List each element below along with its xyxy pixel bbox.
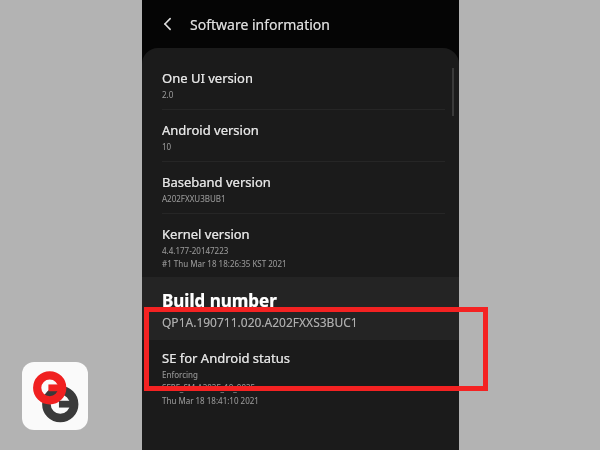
- staticText: SE for Android status: [162, 349, 291, 367]
- button[interactable]: SE for Android status: [142, 340, 459, 415]
- staticText: 4.4.177-20147223: [162, 245, 229, 256]
- staticText: 2.0: [162, 89, 174, 100]
- staticText: Enforcing: [162, 369, 198, 380]
- staticText: Baseband version: [162, 173, 271, 191]
- staticText: A202FXXU3BUB1: [162, 193, 226, 204]
- button[interactable]: One UI version: [142, 58, 459, 110]
- staticText: Kernel version: [162, 225, 250, 243]
- button[interactable]: Baseband version: [142, 162, 459, 214]
- staticText: #1 Thu Mar 18 18:26:35 KST 2021: [162, 258, 287, 269]
- staticText: One UI version: [162, 69, 253, 87]
- staticText: QP1A.190711.020.A202FXXS3BUC1: [162, 314, 358, 330]
- staticText: Build number: [162, 289, 277, 312]
- button[interactable]: Android version: [142, 110, 459, 162]
- staticText: 10: [162, 141, 172, 152]
- staticText: SEPF_SM-A202F_10_0025: [162, 382, 256, 393]
- staticText: Android version: [162, 121, 259, 139]
- button[interactable]: Build number: [142, 277, 459, 340]
- staticText: Thu Mar 18 18:41:10 2021: [162, 395, 259, 406]
- button[interactable]: Kernel version: [142, 214, 459, 277]
- button[interactable]: Back: [152, 8, 184, 40]
- staticText: Software information: [190, 15, 330, 34]
